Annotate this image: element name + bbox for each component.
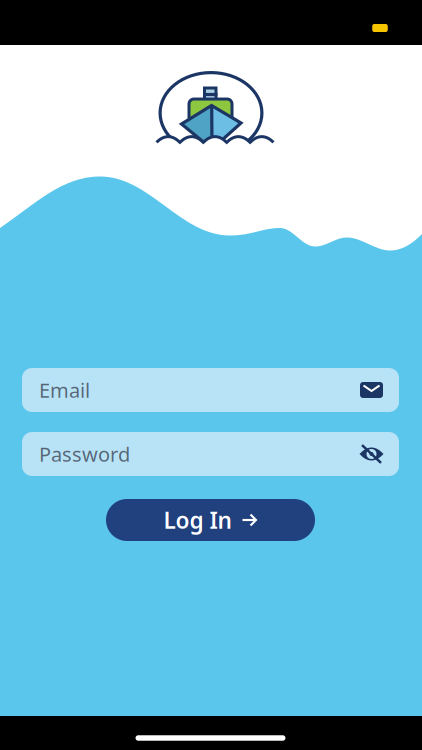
staticText: Password [39,441,130,467]
button[interactable]: Email [22,368,399,412]
button[interactable]: Log In [106,499,315,541]
button[interactable]: Password [22,432,399,476]
staticText: Email [39,377,90,403]
staticText: Log In [163,505,231,535]
